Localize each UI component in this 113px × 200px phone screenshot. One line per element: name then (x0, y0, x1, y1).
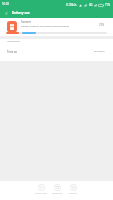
staticText: 0.1Kb/s (66, 3, 77, 7)
button[interactable]: Details (65, 184, 81, 194)
staticText: Battery used by the display and backligh… (21, 24, 70, 27)
staticText: 4G (89, 3, 93, 7)
staticText: 21% (99, 23, 105, 27)
staticText: Screen (21, 20, 31, 24)
staticText: Uninstall (52, 191, 62, 194)
staticText: USE DETAILS (7, 40, 20, 43)
staticText: 10:18 (2, 2, 9, 6)
button[interactable]: Screen (0, 18, 113, 36)
staticText: 8h 34m 6s (94, 50, 105, 53)
staticText: Details (69, 191, 77, 194)
staticText: Battery use (12, 11, 30, 15)
button[interactable]: Uninstall (49, 184, 65, 194)
staticText: 71% (105, 3, 111, 7)
staticText: Time on (7, 50, 18, 54)
button[interactable]: Force stop (33, 184, 49, 194)
button[interactable]: Time on (0, 44, 113, 61)
staticText: Force stop (35, 191, 47, 194)
button[interactable]: Back (0, 9, 12, 18)
